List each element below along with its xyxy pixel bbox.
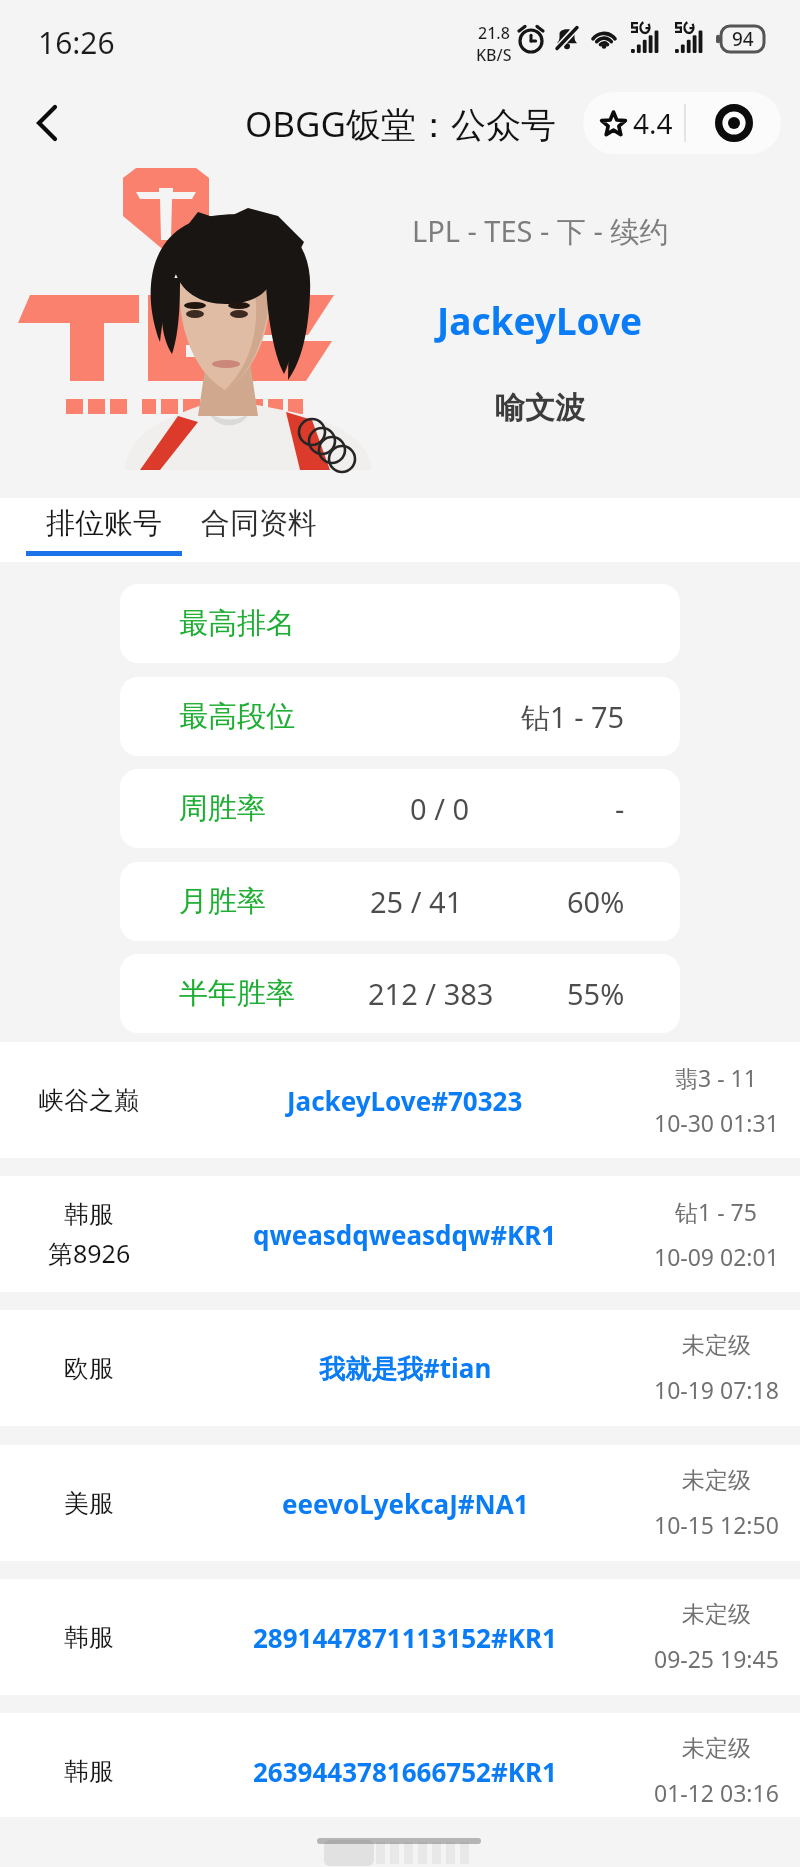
staticText: 欧服 <box>64 1353 114 1384</box>
staticText: 94 <box>732 26 754 52</box>
staticText: 美服 <box>64 1488 114 1519</box>
staticText: 60% <box>567 882 625 921</box>
staticText: 半年胜率 <box>179 975 295 1012</box>
staticText: 21.8 <box>478 22 510 44</box>
staticText: LPL - TES - 下 - 续约 <box>412 211 669 251</box>
button[interactable]: 韩服 <box>0 1579 800 1695</box>
button[interactable]: Back <box>14 92 76 154</box>
staticText: 韩服 <box>64 1199 114 1230</box>
staticText: 月胜率 <box>179 883 266 920</box>
button[interactable]: 排位账号 <box>24 505 184 556</box>
staticText: OBGG饭堂：公众号 <box>245 100 557 148</box>
staticText: 212 / 383 <box>368 974 494 1013</box>
staticText: 韩服 <box>64 1756 114 1787</box>
staticText: 16:26 <box>38 22 115 63</box>
button[interactable]: Record <box>686 92 781 154</box>
staticText: 0 / 0 <box>410 789 470 828</box>
button[interactable]: 周胜率 <box>120 769 680 848</box>
staticText: 最高排名 <box>179 605 295 642</box>
staticText: 钻1 - 75 <box>675 1196 757 1227</box>
staticText: 2891447871113152#KR1 <box>253 1620 557 1655</box>
button[interactable]: 韩服 <box>0 1713 800 1829</box>
button[interactable]: 最高排名 <box>120 584 680 663</box>
button[interactable]: 欧服 <box>0 1310 800 1426</box>
staticText: qweasdqweasdqw#KR1 <box>253 1217 557 1252</box>
staticText: 10-09 02:01 <box>654 1241 779 1272</box>
staticText: 合同资料 <box>201 505 317 542</box>
button[interactable]: 合同资料 <box>191 505 327 542</box>
staticText: 09-25 19:45 <box>654 1643 779 1674</box>
staticText: 最高段位 <box>179 698 295 735</box>
staticText: 第8926 <box>48 1236 131 1270</box>
staticText: 未定级 <box>682 1466 751 1495</box>
staticText: 4.4 <box>633 104 673 142</box>
staticText: 25 / 41 <box>370 882 463 921</box>
staticText: 峡谷之巅 <box>39 1085 139 1116</box>
button[interactable]: 韩服 <box>0 1176 800 1292</box>
staticText: 未定级 <box>682 1600 751 1629</box>
staticText: 翡3 - 11 <box>675 1062 757 1093</box>
button[interactable]: 月胜率 <box>120 862 680 941</box>
button[interactable]: 最高段位 <box>120 677 680 756</box>
staticText: JackeyLove <box>437 295 643 345</box>
staticText: 10-19 07:18 <box>654 1374 779 1405</box>
staticText: 未定级 <box>682 1734 751 1763</box>
staticText: 10-15 12:50 <box>654 1509 779 1540</box>
button[interactable]: 半年胜率 <box>120 954 680 1033</box>
button[interactable]: 4.4 <box>583 92 684 154</box>
staticText: 未定级 <box>682 1331 751 1360</box>
button[interactable]: 峡谷之巅 <box>0 1042 800 1158</box>
staticText: 钻1 - 75 <box>521 697 625 737</box>
staticText: 55% <box>567 974 625 1013</box>
staticText: 周胜率 <box>179 790 266 827</box>
staticText: JackeyLove#70323 <box>287 1083 523 1118</box>
button[interactable]: 美服 <box>0 1445 800 1561</box>
staticText: 10-30 01:31 <box>654 1107 779 1138</box>
staticText: 喻文波 <box>495 389 585 427</box>
staticText: 2639443781666752#KR1 <box>253 1754 557 1789</box>
staticText: 排位账号 <box>46 505 162 542</box>
staticText: 韩服 <box>64 1622 114 1653</box>
staticText: 我就是我#tian <box>319 1350 492 1386</box>
staticText: KB/S <box>476 44 512 66</box>
staticText: - <box>615 789 625 828</box>
staticText: 01-12 03:16 <box>654 1777 779 1808</box>
staticText: eeevoLyekcaJ#NA1 <box>282 1486 529 1521</box>
